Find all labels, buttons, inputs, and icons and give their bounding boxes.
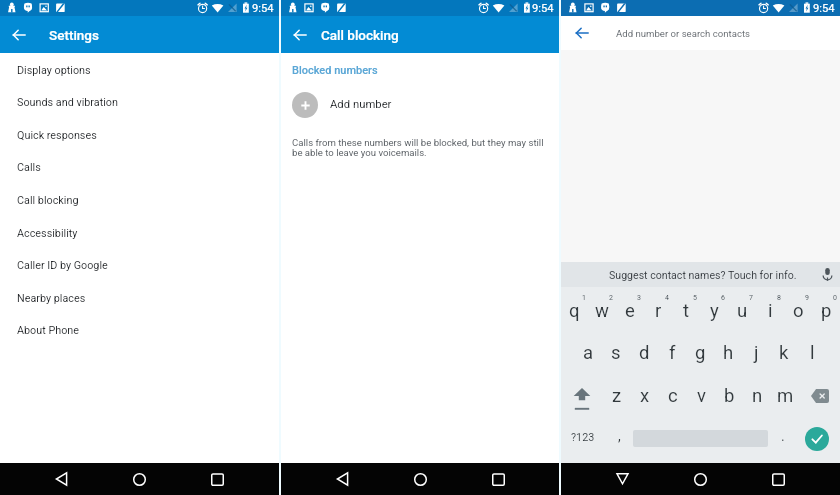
staticText: d xyxy=(639,342,650,364)
button[interactable]: v xyxy=(687,376,715,418)
button[interactable]: z xyxy=(602,376,631,418)
button[interactable]: 6 xyxy=(700,287,728,333)
button[interactable]: Recent apps xyxy=(761,463,795,495)
staticText: ?123 xyxy=(571,431,595,444)
staticText: n xyxy=(752,385,763,407)
button[interactable]: s xyxy=(602,333,630,376)
button[interactable]: Nearby places xyxy=(0,282,279,314)
staticText: 9:54 xyxy=(532,2,554,15)
button[interactable]: Accessibility xyxy=(0,217,279,249)
button[interactable]: c xyxy=(659,376,687,418)
staticText: w xyxy=(595,300,609,322)
staticText: h xyxy=(723,342,734,364)
button[interactable]: 1 xyxy=(561,287,588,333)
button[interactable]: Display options xyxy=(0,54,279,86)
staticText: f xyxy=(669,342,676,364)
button[interactable]: About Phone xyxy=(0,314,279,346)
button[interactable]: j xyxy=(742,333,770,376)
button[interactable]: 3 xyxy=(616,287,644,333)
staticText: Nearby places xyxy=(17,292,86,305)
button[interactable]: 9 xyxy=(784,287,812,333)
staticText: 4 xyxy=(665,294,669,302)
staticText: 9 xyxy=(805,294,809,302)
staticText: 9:54 xyxy=(813,2,835,15)
button[interactable]: Back xyxy=(44,463,78,495)
staticText: z xyxy=(612,385,622,407)
button[interactable]: Recent apps xyxy=(200,463,234,495)
button[interactable]: b xyxy=(715,376,743,418)
staticText: g xyxy=(695,342,706,364)
staticText: t xyxy=(683,300,690,322)
staticText: i xyxy=(768,300,773,322)
button[interactable]: Call blocking xyxy=(0,184,279,216)
button[interactable]: Home xyxy=(122,463,156,495)
button[interactable]: h xyxy=(714,333,742,376)
button[interactable]: Calls xyxy=(0,151,279,183)
staticText: 8 xyxy=(777,294,781,302)
staticText: Display options xyxy=(17,64,91,77)
staticText: 3 xyxy=(637,294,641,302)
button[interactable]: x xyxy=(631,376,659,418)
button[interactable]: Voice input xyxy=(814,262,840,287)
button[interactable]: Add number xyxy=(281,87,559,122)
staticText: , xyxy=(618,428,621,444)
button[interactable]: Back xyxy=(605,463,639,495)
staticText: p xyxy=(821,300,832,322)
button[interactable]: Shift xyxy=(561,376,602,418)
button[interactable]: Home xyxy=(403,463,437,495)
button[interactable]: Quick responses xyxy=(0,119,279,151)
button[interactable]: Navigate up xyxy=(281,16,319,53)
button[interactable]: ?123 xyxy=(561,418,606,463)
button[interactable]: Done xyxy=(805,427,829,451)
staticText: a xyxy=(583,342,594,364)
staticText: y xyxy=(710,300,719,322)
button[interactable]: g xyxy=(686,333,714,376)
button[interactable]: 2 xyxy=(588,287,616,333)
button[interactable]: Home xyxy=(683,463,717,495)
button[interactable]: Space xyxy=(631,418,770,463)
staticText: 1 xyxy=(582,294,586,302)
staticText: Add number or search contacts xyxy=(616,28,751,39)
staticText: r xyxy=(655,300,662,322)
button[interactable]: f xyxy=(658,333,686,376)
button[interactable]: Navigate up xyxy=(0,16,38,53)
staticText: Calls xyxy=(17,161,41,174)
staticText: About Phone xyxy=(17,324,80,337)
button[interactable]: 0 xyxy=(812,287,840,333)
button[interactable]: n xyxy=(743,376,771,418)
staticText: s xyxy=(611,342,621,364)
staticText: 6 xyxy=(721,294,725,302)
button[interactable]: a xyxy=(575,333,602,376)
button[interactable]: Backspace xyxy=(799,376,840,418)
button[interactable]: Back xyxy=(325,463,359,495)
button[interactable]: 7 xyxy=(728,287,756,333)
staticText: l xyxy=(810,342,815,364)
button[interactable]: m xyxy=(771,376,799,418)
staticText: 2 xyxy=(609,294,613,302)
staticText: q xyxy=(569,300,580,322)
staticText: e xyxy=(625,300,635,322)
staticText: j xyxy=(754,342,759,364)
button[interactable]: d xyxy=(630,333,658,376)
button[interactable]: 5 xyxy=(672,287,700,333)
staticText: v xyxy=(697,385,706,407)
staticText: Call blocking xyxy=(17,194,79,207)
button[interactable]: . xyxy=(770,418,796,463)
staticText: m xyxy=(777,385,794,407)
staticText: Blocked numbers xyxy=(292,64,378,77)
staticText: 7 xyxy=(749,294,753,302)
button[interactable]: l xyxy=(798,333,826,376)
button[interactable]: Navigate up xyxy=(561,16,603,50)
button[interactable]: , xyxy=(606,418,631,463)
staticText: b xyxy=(724,385,735,407)
button[interactable]: Sounds and vibration xyxy=(0,86,279,118)
staticText: k xyxy=(779,342,789,364)
staticText: 9:54 xyxy=(252,2,274,15)
button[interactable]: k xyxy=(770,333,798,376)
button[interactable]: Caller ID by Google xyxy=(0,249,279,281)
staticText: 5 xyxy=(693,294,697,302)
button[interactable]: 8 xyxy=(756,287,784,333)
button[interactable]: 4 xyxy=(644,287,672,333)
button[interactable]: Recent apps xyxy=(481,463,515,495)
staticText: x xyxy=(640,385,650,407)
